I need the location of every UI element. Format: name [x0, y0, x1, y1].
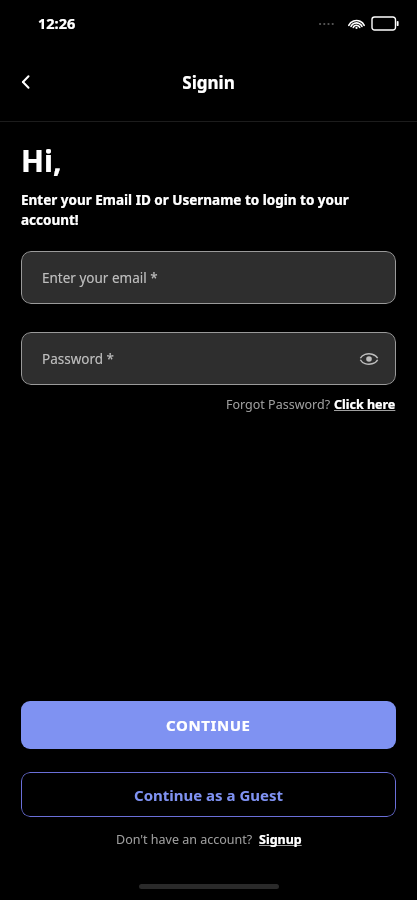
button[interactable]: Continue as a Guest	[21, 772, 396, 817]
staticText: Click here	[334, 396, 396, 413]
staticText: 12:26	[38, 13, 76, 33]
button[interactable]: Back	[6, 62, 46, 102]
staticText: Enter your Email ID or Username to login…	[21, 191, 396, 229]
button[interactable]: Show password	[355, 345, 383, 373]
staticText: Don't have an account?	[116, 831, 259, 848]
staticText: Password *	[42, 350, 115, 368]
staticText: Hi,	[21, 140, 62, 181]
staticText: Signup	[259, 831, 302, 848]
button[interactable]: CONTINUE	[21, 701, 396, 749]
button[interactable]: Password *	[21, 332, 396, 385]
staticText: Forgot Password?	[226, 396, 334, 413]
staticText: Signin	[182, 71, 235, 94]
button[interactable]: Signup	[259, 831, 302, 848]
staticText: Enter your email *	[42, 269, 158, 287]
staticText: CONTINUE	[166, 715, 251, 735]
button[interactable]: Click here	[334, 396, 396, 413]
staticText: Continue as a Guest	[134, 785, 284, 805]
button[interactable]: Enter your email *	[21, 251, 396, 304]
